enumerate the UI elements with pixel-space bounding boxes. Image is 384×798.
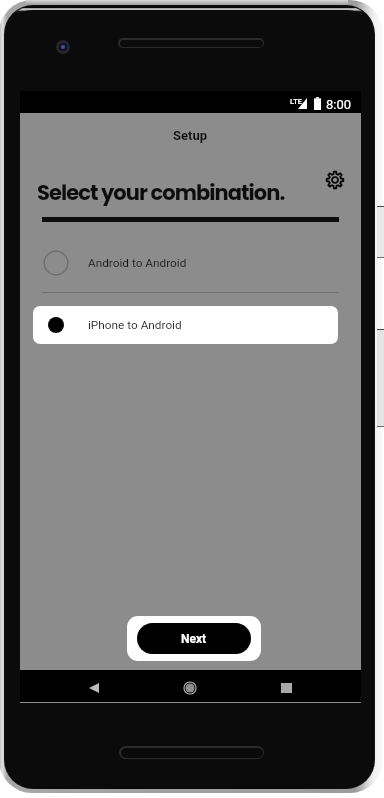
other: Volume button	[377, 329, 384, 427]
staticText: 8:00	[326, 97, 352, 112]
button[interactable]: Settings	[324, 169, 346, 191]
staticText: Setup	[173, 128, 208, 143]
staticText: LTE	[290, 97, 303, 106]
button[interactable]: Back	[79, 673, 109, 703]
button[interactable]: Recents	[271, 673, 301, 703]
button[interactable]: Home	[175, 673, 205, 703]
staticText: Next	[181, 632, 207, 646]
staticText: iPhone to Android	[88, 318, 182, 332]
button[interactable]: Android to Android	[20, 244, 361, 282]
other: Power button	[377, 206, 384, 258]
button[interactable]: Next	[137, 623, 251, 654]
button[interactable]: iPhone to Android	[33, 306, 338, 344]
staticText: Select your combination.	[37, 178, 285, 207]
staticText: Android to Android	[88, 256, 187, 270]
